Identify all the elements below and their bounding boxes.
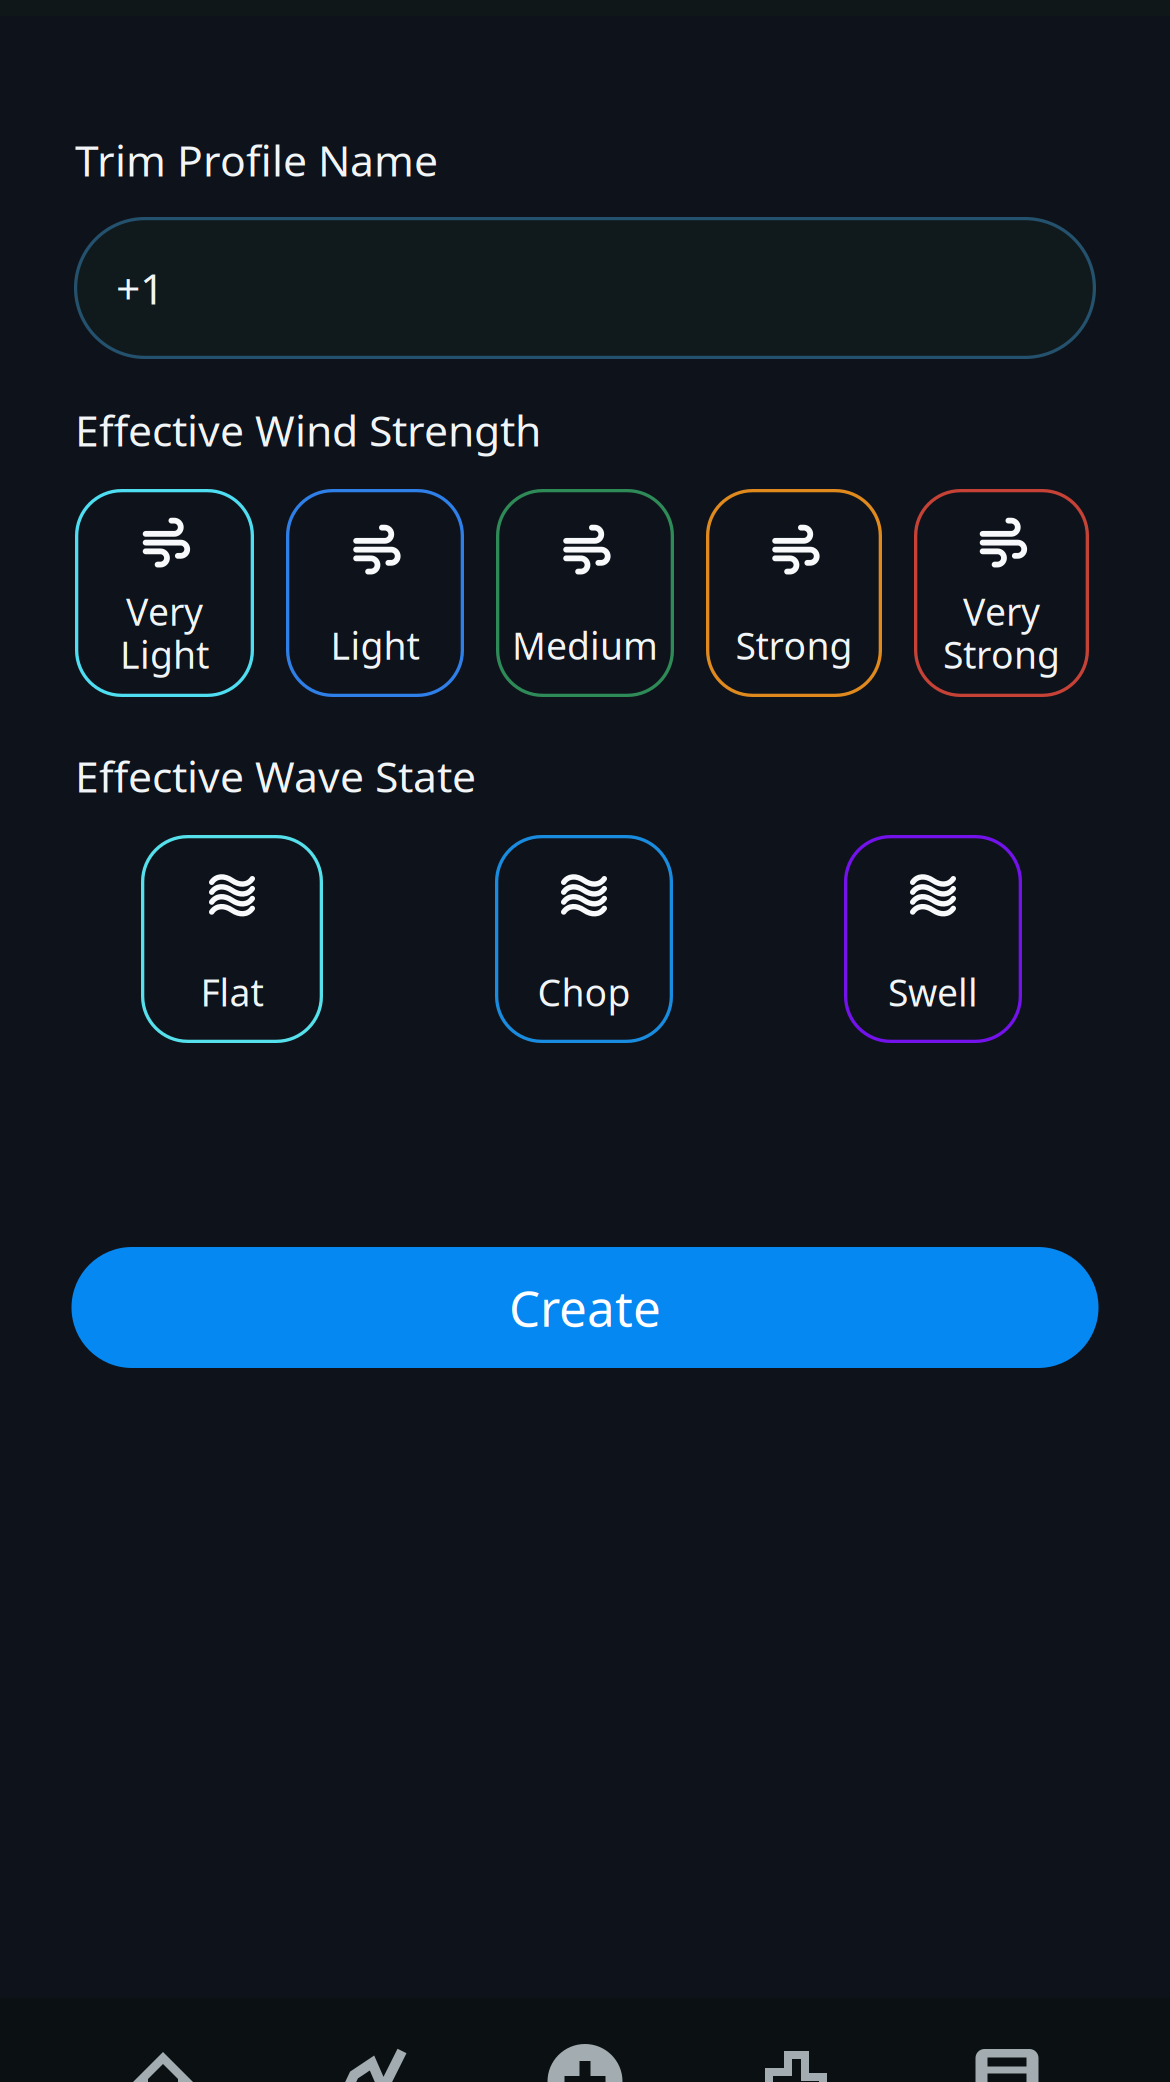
staticText: Trim Profile Name (75, 132, 438, 188)
staticText: Strong (735, 621, 852, 670)
button[interactable]: Very (75, 489, 254, 697)
staticText: Swell (888, 967, 978, 1017)
button[interactable]: Create (71, 1247, 1098, 1368)
staticText: Medium (512, 621, 658, 670)
button[interactable]: Chop (495, 835, 673, 1043)
button[interactable]: Leaderboard (690, 2052, 901, 2082)
staticText: Very (126, 587, 203, 636)
staticText: Light (330, 621, 419, 670)
button[interactable]: Log (901, 2052, 1112, 2082)
staticText: Chop (537, 967, 630, 1017)
staticText: Light (120, 630, 209, 679)
staticText: Effective Wind Strength (75, 402, 541, 458)
staticText: +1 (116, 260, 164, 316)
button[interactable]: Swell (844, 835, 1022, 1043)
staticText: Flat (200, 967, 263, 1017)
staticText: Effective Wave State (75, 748, 476, 804)
button[interactable]: Light (286, 489, 464, 697)
button[interactable]: Home (57, 2052, 268, 2082)
button[interactable]: Stats (268, 2052, 479, 2082)
staticText: Strong (943, 630, 1060, 679)
staticText: Create (509, 1275, 661, 1340)
button[interactable]: Add (479, 2052, 690, 2082)
button[interactable]: Flat (141, 835, 323, 1043)
button[interactable]: Medium (496, 489, 674, 697)
button[interactable]: Very (914, 489, 1089, 697)
button[interactable]: Strong (706, 489, 882, 697)
staticText: Very (963, 587, 1040, 636)
